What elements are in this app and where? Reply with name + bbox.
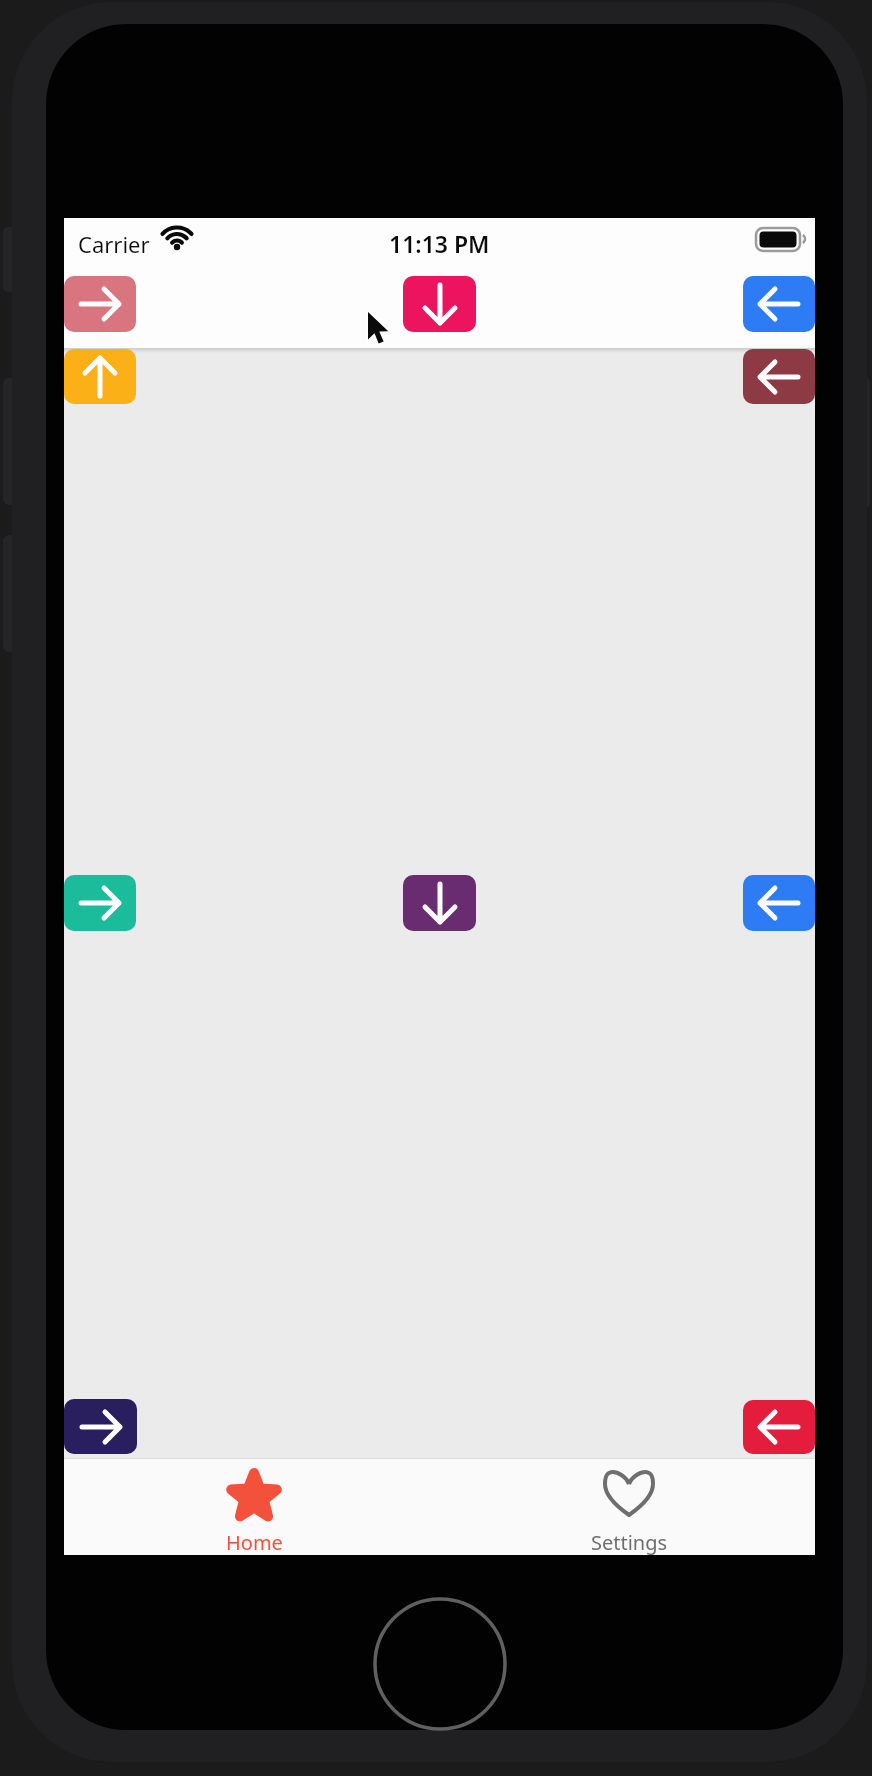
button[interactable] bbox=[64, 1399, 137, 1454]
button[interactable] bbox=[743, 349, 815, 404]
button[interactable]: Home bbox=[194, 1462, 314, 1552]
staticText: Home bbox=[226, 1529, 283, 1556]
button[interactable] bbox=[64, 875, 136, 931]
button[interactable] bbox=[403, 276, 476, 332]
button[interactable] bbox=[743, 875, 815, 931]
button[interactable] bbox=[743, 276, 815, 332]
staticText: Settings bbox=[591, 1529, 668, 1556]
button[interactable] bbox=[743, 1400, 815, 1454]
button[interactable]: Settings bbox=[569, 1462, 689, 1552]
staticText: 11:13 PM bbox=[389, 228, 490, 259]
button[interactable] bbox=[64, 349, 136, 404]
staticText: Carrier bbox=[78, 229, 150, 259]
button[interactable] bbox=[64, 276, 136, 332]
button[interactable] bbox=[403, 875, 476, 931]
